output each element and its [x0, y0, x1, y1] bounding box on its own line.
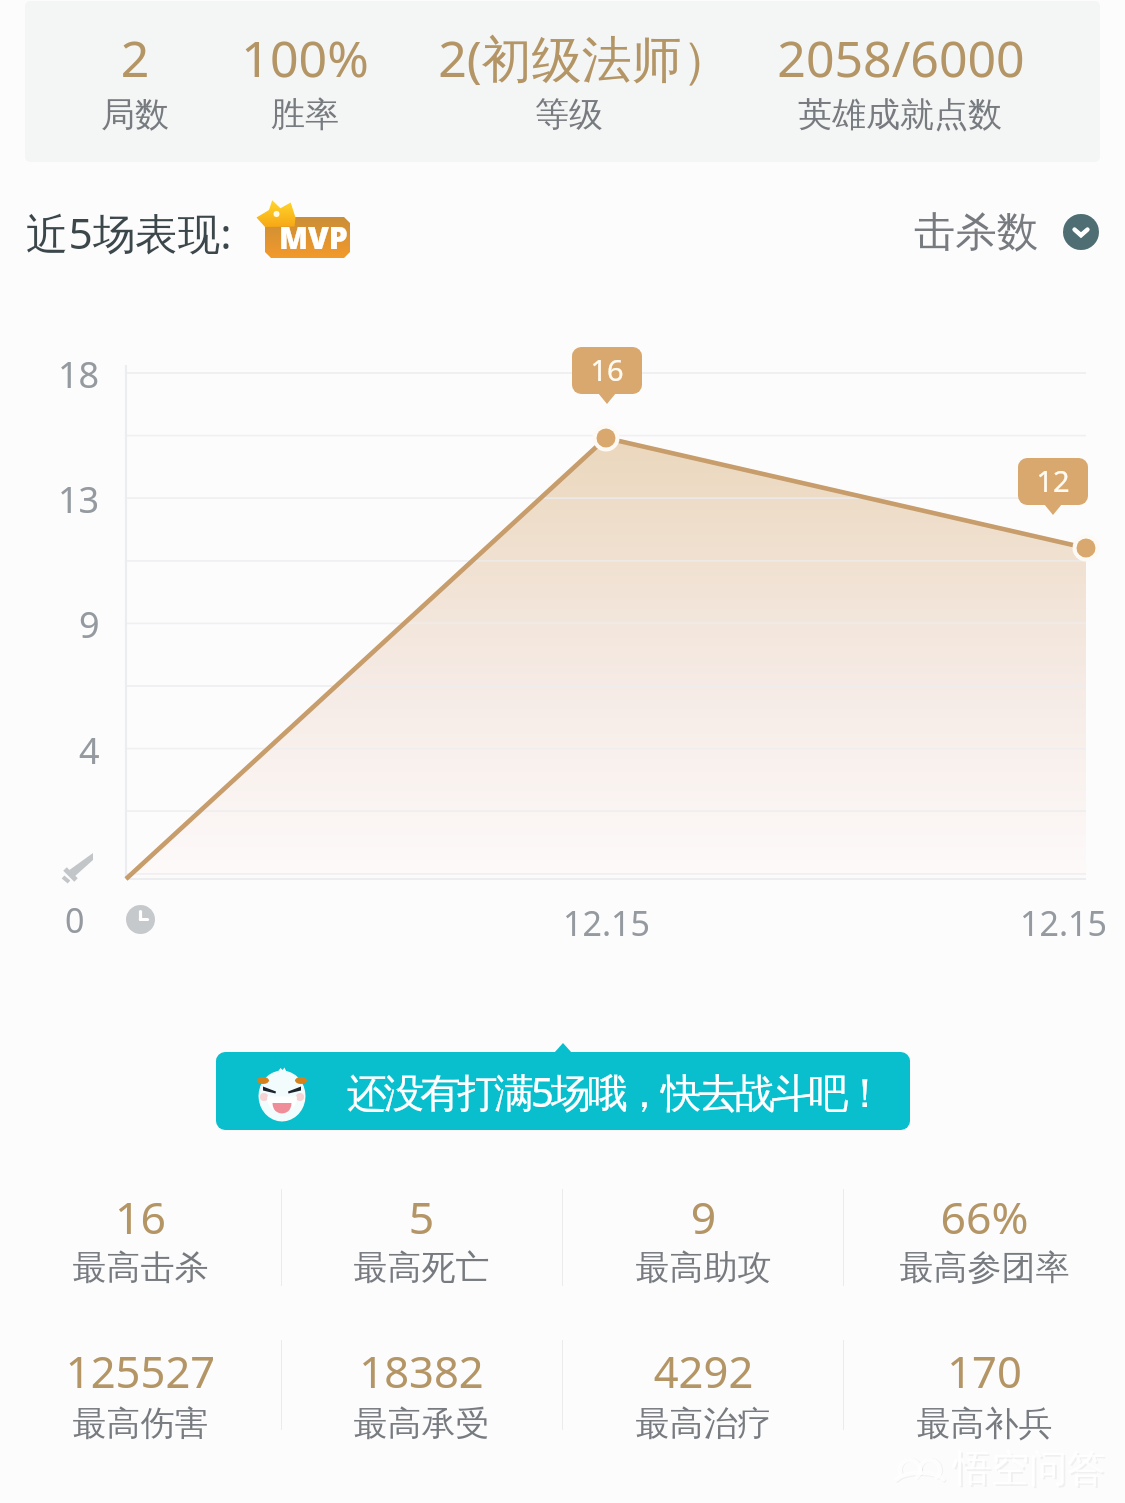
button[interactable]: 18382: [281, 1333, 562, 1448]
staticText: 近5场表现:: [26, 204, 232, 262]
staticText: 最高死亡: [281, 1246, 562, 1289]
button[interactable]: 2: [25, 1, 1100, 162]
other: 切换数据: [1063, 214, 1099, 250]
staticText: 2: [25, 24, 355, 92]
staticText: 悟空问答: [953, 1444, 1105, 1492]
staticText: 最高承受: [281, 1402, 562, 1445]
staticText: 最高治疗: [563, 1402, 844, 1445]
staticText: 100%: [85, 24, 525, 92]
staticText: 5: [281, 1186, 562, 1247]
staticText: 击杀数: [914, 206, 1039, 258]
button[interactable]: 5: [281, 1178, 562, 1292]
button[interactable]: 击杀数: [914, 197, 1099, 267]
staticText: 9: [79, 600, 100, 646]
staticText: 18382: [281, 1341, 562, 1400]
staticText: 16: [0, 1186, 281, 1247]
button[interactable]: 4292: [563, 1333, 844, 1448]
staticText: 125527: [0, 1341, 281, 1400]
staticText: 最高助攻: [563, 1246, 844, 1289]
button[interactable]: 125527: [0, 1333, 281, 1448]
staticText: 还没有打满5场哦，快去战斗吧！: [347, 1064, 882, 1119]
staticText: 12: [1018, 461, 1088, 500]
button[interactable]: 还没有打满5场哦，快去战斗吧！: [216, 1052, 910, 1130]
staticText: 英雄成就点数: [680, 93, 1100, 136]
staticText: 170: [844, 1341, 1125, 1400]
staticText: 13: [58, 475, 100, 521]
staticText: 最高伤害: [0, 1402, 281, 1445]
staticText: 4: [79, 726, 100, 772]
staticText: 悟空问答: [955, 1446, 1107, 1494]
button[interactable]: MVP: [250, 195, 354, 265]
button[interactable]: 170: [844, 1333, 1125, 1448]
staticText: 2058/6000: [681, 24, 1100, 92]
staticText: 胜率: [85, 93, 525, 136]
staticText: 18: [58, 350, 100, 396]
staticText: 66%: [844, 1186, 1125, 1247]
button[interactable]: 66%: [844, 1178, 1125, 1292]
staticText: 16: [572, 350, 642, 389]
button[interactable]: 16: [0, 1178, 281, 1292]
staticText: 12.15: [1020, 900, 1107, 946]
staticText: 局数: [25, 93, 355, 136]
button[interactable]: 9: [563, 1178, 844, 1292]
staticText: 9: [563, 1186, 844, 1247]
staticText: 12.15: [563, 900, 650, 946]
staticText: 最高参团率: [844, 1246, 1125, 1289]
staticText: 等级: [349, 93, 789, 136]
staticText: 最高击杀: [0, 1246, 281, 1289]
staticText: MVP: [279, 217, 348, 258]
staticText: 4292: [563, 1341, 844, 1400]
staticText: 2(初级法师）: [365, 24, 805, 92]
staticText: 最高补兵: [844, 1402, 1125, 1445]
staticText: 0: [65, 897, 85, 943]
other: 时间: [126, 905, 155, 934]
